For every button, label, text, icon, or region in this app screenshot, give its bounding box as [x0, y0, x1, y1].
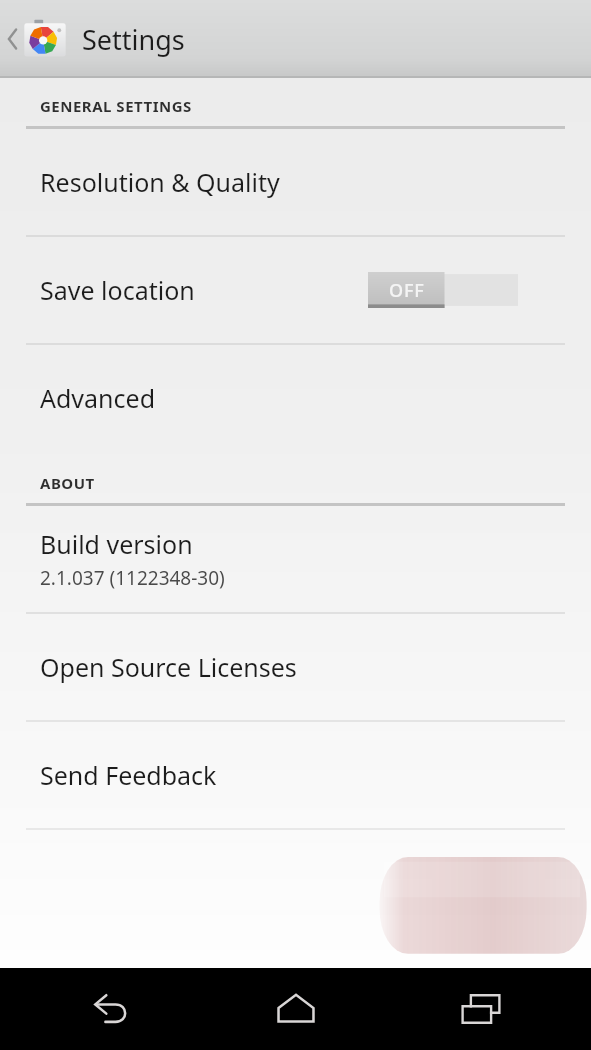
- staticText: Save location: [40, 273, 368, 307]
- button[interactable]: Save location: [0, 237, 591, 343]
- staticText: Build version: [40, 527, 193, 561]
- staticText: Send Feedback: [40, 758, 217, 792]
- staticText: GENERAL SETTINGS: [40, 96, 192, 116]
- staticText: 2.1.037 (1122348-30): [40, 565, 225, 591]
- button[interactable]: Advanced: [0, 345, 591, 451]
- button[interactable]: Resolution & Quality: [0, 129, 591, 235]
- staticText: ABOUT: [40, 473, 95, 493]
- staticText: Settings: [82, 21, 185, 58]
- button[interactable]: Recent apps: [406, 968, 556, 1050]
- button[interactable]: Home: [221, 968, 371, 1050]
- button[interactable]: Send Feedback: [0, 722, 591, 828]
- button[interactable]: Back: [35, 968, 185, 1050]
- staticText: Advanced: [40, 381, 156, 415]
- button[interactable]: Navigate up, Settings: [0, 0, 591, 78]
- staticText: Resolution & Quality: [40, 165, 280, 199]
- staticText: OFF: [389, 278, 425, 303]
- staticText: Open Source Licenses: [40, 650, 297, 684]
- button[interactable]: Build version: [0, 506, 591, 612]
- button[interactable]: Open Source Licenses: [0, 614, 591, 720]
